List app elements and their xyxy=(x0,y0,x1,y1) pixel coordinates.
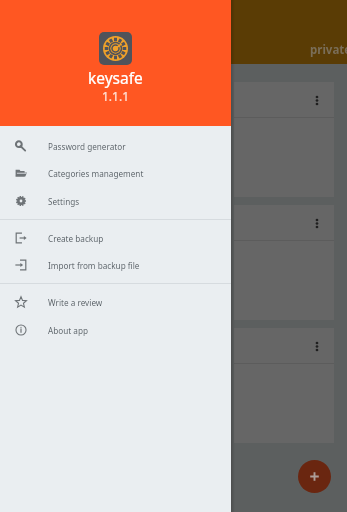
button[interactable]: Settings xyxy=(0,187,231,215)
staticText: keysafe xyxy=(88,67,143,88)
button[interactable]: More options xyxy=(307,212,327,232)
staticText: Import from backup file xyxy=(48,260,140,271)
staticText: Password generator xyxy=(48,141,126,152)
button[interactable]: More options xyxy=(307,89,327,109)
button[interactable]: Import from backup file xyxy=(0,251,231,279)
button[interactable]: Add xyxy=(298,460,331,493)
button[interactable]: About app xyxy=(0,316,231,344)
staticText: Categories management xyxy=(48,168,144,179)
staticText: private xyxy=(310,42,347,58)
staticText: About app xyxy=(48,325,89,336)
button[interactable]: Create backup xyxy=(0,224,231,252)
button[interactable]: Write a review xyxy=(0,288,231,316)
button[interactable]: More options xyxy=(307,335,327,355)
staticText: Write a review xyxy=(48,297,103,308)
staticText: Create backup xyxy=(48,233,104,244)
button[interactable]: Categories management xyxy=(0,159,231,187)
staticText: Settings xyxy=(48,196,80,207)
staticText: 1.1.1 xyxy=(102,88,130,104)
button[interactable]: Close navigation drawer xyxy=(231,0,347,512)
button[interactable]: Password generator xyxy=(0,132,231,160)
